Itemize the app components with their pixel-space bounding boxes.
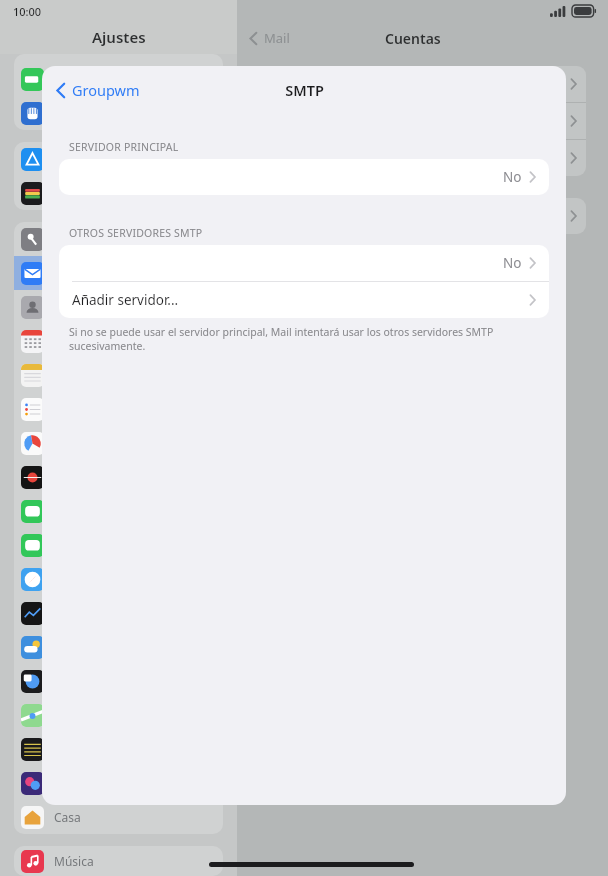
button[interactable]: [259, 140, 586, 176]
staticText: OTROS SERVIDORES SMTP: [69, 226, 203, 240]
button[interactable]: No: [59, 159, 549, 195]
button[interactable]: Atajos: [14, 732, 223, 766]
button[interactable]: [259, 198, 586, 234]
button[interactable]: [259, 103, 586, 139]
staticText: Groupwm: [72, 80, 140, 100]
button[interactable]: [259, 66, 586, 102]
button[interactable]: Contactos: [14, 290, 223, 324]
button[interactable]: Mail: [14, 256, 223, 290]
button[interactable]: Cartera: [14, 176, 223, 210]
staticText: No: [503, 254, 522, 272]
button[interactable]: Añadir servidor...: [59, 282, 549, 318]
staticText: Contactos: [54, 299, 111, 315]
button[interactable]: Voz: [14, 460, 223, 494]
staticText: Ajustes: [92, 27, 146, 47]
button[interactable]: Música: [14, 846, 223, 876]
staticText: Mail: [264, 29, 290, 47]
button[interactable]: App Store: [14, 142, 223, 176]
staticText: Si no se puede usar el servidor principa…: [69, 325, 539, 353]
staticText: Añadir servidor...: [72, 291, 179, 309]
button[interactable]: Casa: [14, 800, 223, 834]
button[interactable]: Notas: [14, 358, 223, 392]
staticText: Contraseñas: [54, 231, 125, 247]
staticText: App Store: [54, 151, 110, 167]
button[interactable]: Atajos: [14, 766, 223, 800]
button[interactable]: Calendario: [14, 324, 223, 358]
button[interactable]: Batería: [14, 62, 223, 96]
button[interactable]: Mapas: [14, 698, 223, 732]
staticText: Casa: [54, 809, 81, 825]
staticText: Cuentas: [385, 29, 441, 48]
staticText: SMTP: [285, 80, 324, 100]
button[interactable]: Bolsa: [14, 596, 223, 630]
button[interactable]: El Tiempo: [14, 630, 223, 664]
staticText: No: [503, 168, 522, 186]
button[interactable]: No: [59, 245, 549, 281]
button[interactable]: Bolsa: [14, 426, 223, 460]
staticText: 10:00: [13, 4, 42, 19]
button[interactable]: Groupwm: [52, 75, 144, 105]
staticText: Batería: [54, 71, 95, 87]
button[interactable]: Mail: [249, 29, 290, 47]
staticText: SERVIDOR PRINCIPAL: [69, 140, 179, 154]
staticText: Cartera: [54, 185, 96, 201]
staticText: Mail: [54, 265, 78, 281]
button[interactable]: Mensajes: [14, 494, 223, 528]
staticText: Música: [54, 853, 94, 869]
button[interactable]: Recordatorios: [14, 392, 223, 426]
button[interactable]: Safari: [14, 562, 223, 596]
button[interactable]: Traducir: [14, 664, 223, 698]
button[interactable]: FaceTime: [14, 528, 223, 562]
button[interactable]: Privacidad: [14, 96, 223, 130]
staticText: Calendario: [54, 333, 116, 349]
button[interactable]: Contraseñas: [14, 222, 223, 256]
